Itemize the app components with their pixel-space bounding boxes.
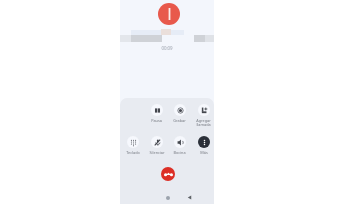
button[interactable]: Teclado	[121, 136, 144, 155]
button[interactable]: Pausa	[145, 104, 168, 123]
button[interactable]: Home	[166, 196, 170, 200]
other: Foto de contacto	[158, 3, 180, 25]
button[interactable]: Grabar	[168, 104, 191, 123]
staticText: Grabar	[173, 118, 186, 123]
button[interactable]: Bocina	[168, 136, 191, 155]
staticText: Silenciar	[149, 150, 165, 155]
staticText: Bocina	[173, 150, 186, 155]
button[interactable]: Más	[192, 136, 214, 155]
button[interactable]: Agregar llamada	[192, 104, 214, 127]
button[interactable]: Back	[187, 195, 192, 200]
staticText: 00:09	[120, 45, 214, 51]
staticText: Agregar llamada	[196, 118, 211, 127]
staticText: Más	[200, 150, 208, 155]
button[interactable]: Silenciar	[145, 136, 168, 155]
staticText: Pausa	[151, 118, 162, 123]
staticText: Teclado	[126, 150, 140, 155]
button[interactable]: Finalizar llamada	[161, 167, 175, 181]
